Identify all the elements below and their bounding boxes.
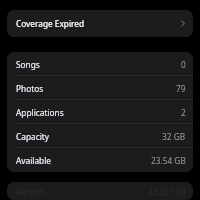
staticText: 23.021.04: [148, 186, 186, 197]
staticText: Capacity: [16, 131, 50, 142]
button[interactable]: Version: [7, 182, 193, 200]
button[interactable]: Songs: [7, 52, 193, 76]
staticText: Photos: [16, 83, 44, 94]
button[interactable]: Applications: [7, 100, 193, 124]
staticText: 79: [176, 83, 186, 94]
staticText: Coverage Expired: [16, 18, 85, 29]
staticText: 2: [181, 107, 186, 118]
staticText: Applications: [16, 107, 64, 118]
staticText: Available: [16, 155, 52, 166]
button[interactable]: Available: [7, 148, 193, 172]
staticText: 32 GB: [162, 131, 186, 142]
button[interactable]: Coverage Expired: [7, 10, 193, 37]
button[interactable]: Photos: [7, 76, 193, 100]
staticText: 0: [181, 59, 186, 70]
staticText: Version: [16, 186, 46, 197]
staticText: Songs: [16, 59, 40, 70]
staticText: 23.54 GB: [151, 155, 186, 166]
button[interactable]: Capacity: [7, 124, 193, 148]
